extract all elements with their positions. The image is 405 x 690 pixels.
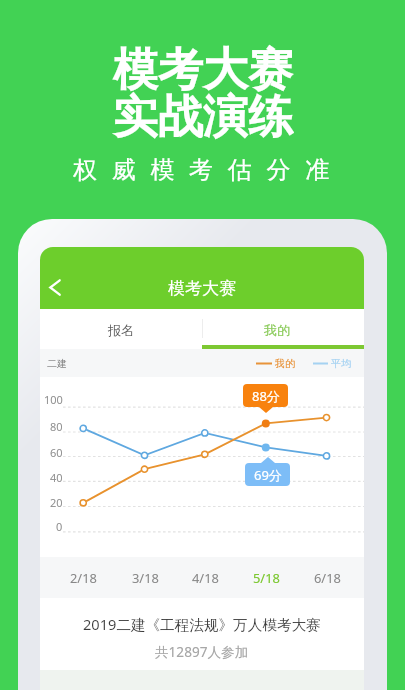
staticText: 80 [50, 419, 63, 433]
staticText: 权威模考估分准 [73, 155, 344, 185]
staticText: 2019二建《工程法规》万人模考大赛 [83, 614, 321, 634]
staticText: 报名 [108, 322, 135, 339]
button[interactable]: Back [40, 267, 80, 307]
staticText: 100 [44, 392, 63, 406]
staticText: 3/18 [132, 569, 159, 587]
staticText: 4/18 [192, 569, 219, 587]
staticText: 我的 [264, 322, 291, 339]
staticText: 二建 [47, 357, 67, 370]
staticText: 共12897人参加 [155, 642, 249, 661]
button[interactable]: 报名 [40, 309, 202, 349]
staticText: 88分 [252, 387, 280, 405]
staticText: 6/18 [314, 569, 341, 587]
button[interactable]: 我的 [202, 309, 364, 349]
staticText: 2/18 [70, 569, 97, 587]
staticText: 我的 [275, 357, 295, 370]
staticText: 69分 [254, 466, 282, 484]
staticText: 60 [50, 445, 63, 459]
staticText: 20 [50, 495, 63, 509]
staticText: 模考大赛 [113, 42, 293, 99]
staticText: 实战演练 [113, 89, 293, 146]
staticText: 5/18 [253, 569, 280, 587]
staticText: 40 [50, 470, 63, 484]
staticText: 平均 [331, 357, 351, 370]
staticText: 0 [56, 519, 63, 533]
staticText: 模考大赛 [168, 278, 236, 299]
